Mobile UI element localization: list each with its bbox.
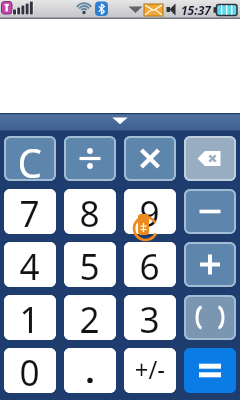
button[interactable] [184,189,236,234]
button[interactable]: +/- [124,348,176,393]
staticText: 1 [19,293,40,338]
button[interactable]: 4 [4,242,56,287]
staticText: 7 [19,187,40,232]
staticText: 15:37 [181,2,211,18]
button[interactable]: 6 [124,242,176,287]
staticText: 6 [140,240,160,285]
button[interactable]: 1 [4,295,56,340]
button[interactable]: 2 [64,295,116,340]
button[interactable] [64,136,116,181]
staticText: +/- [135,352,165,386]
staticText: 3 [140,293,160,338]
button[interactable] [0,113,240,131]
button[interactable] [184,295,236,340]
button[interactable]: C [4,136,56,181]
button[interactable]: 0 [4,348,56,393]
button[interactable] [184,348,236,393]
button[interactable]: 8 [64,189,116,234]
staticText: C [18,135,42,180]
staticText: 2 [80,293,100,338]
staticText: 8 [80,187,100,232]
button[interactable] [184,136,236,181]
button[interactable] [124,136,176,181]
button[interactable] [184,242,236,287]
button[interactable] [64,348,116,393]
staticText: 9 [140,187,160,232]
button[interactable]: 9 [124,189,176,234]
button[interactable]: 3 [124,295,176,340]
button[interactable]: 5 [64,242,116,287]
staticText: 0 [19,346,40,391]
staticText: 4 [19,240,40,285]
staticText: 5 [80,240,100,285]
button[interactable]: 7 [4,189,56,234]
